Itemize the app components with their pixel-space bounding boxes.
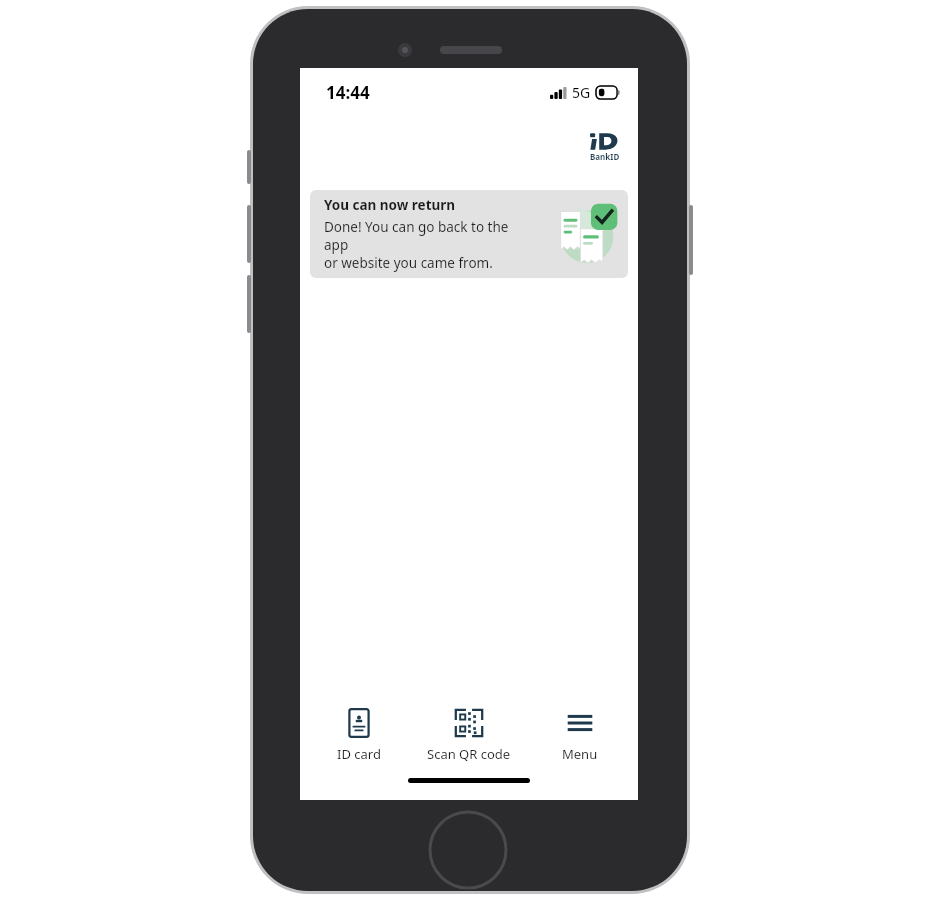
button[interactable]: BankID bbox=[588, 130, 622, 162]
staticText: Scan QR code bbox=[427, 745, 511, 763]
staticText: Done! You can go back to the app or webs… bbox=[324, 218, 536, 272]
staticText: BankID bbox=[590, 151, 620, 162]
button[interactable]: You can now return bbox=[310, 190, 628, 278]
button[interactable]: ID card bbox=[307, 704, 411, 767]
staticText: 5G bbox=[572, 83, 591, 102]
button[interactable]: Scan QR code bbox=[417, 704, 521, 767]
staticText: 14:44 bbox=[326, 81, 370, 104]
staticText: Menu bbox=[562, 745, 598, 763]
staticText: You can now return bbox=[324, 196, 456, 214]
button[interactable]: Menu bbox=[528, 704, 632, 767]
staticText: ID card bbox=[337, 745, 381, 763]
